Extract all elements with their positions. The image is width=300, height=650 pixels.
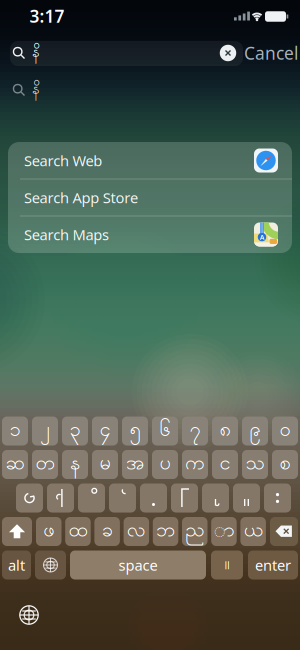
staticText: ၄ [99, 417, 110, 445]
staticText: ၆ [159, 417, 170, 445]
staticText: ခ [102, 517, 113, 546]
staticText: Cancel [244, 41, 298, 64]
staticText: space [118, 555, 157, 575]
staticText: A [260, 233, 264, 242]
staticText: ယ [244, 517, 263, 546]
staticText: ပ [159, 450, 170, 479]
staticText: ၉ [249, 417, 260, 445]
staticText: ၃ [69, 417, 80, 445]
staticText: န [70, 450, 80, 479]
staticText: Search App Store [24, 188, 138, 207]
staticText: နိ [32, 42, 40, 64]
staticText: ။ [224, 552, 229, 577]
staticText: ၈ [219, 417, 230, 445]
staticText: ထ [68, 517, 87, 546]
staticText: Search Web [24, 151, 102, 170]
staticText: မ [99, 450, 110, 479]
staticText: ဘ [156, 517, 175, 546]
staticText: ၀ [279, 417, 290, 445]
staticText: ၅ [129, 417, 140, 445]
staticText: စ [279, 450, 290, 479]
staticText: အ [126, 450, 144, 479]
staticText: enter [255, 555, 291, 575]
staticText: သ [245, 450, 264, 479]
staticText: ဖ [43, 517, 54, 546]
staticText: ာ [213, 517, 234, 546]
staticText: ၇ [189, 417, 200, 445]
staticText: ည [185, 517, 204, 546]
staticText: 3:17 [29, 4, 64, 27]
staticText: လ [127, 517, 146, 546]
staticText: င [219, 450, 230, 479]
staticText: alt [8, 555, 25, 575]
staticText: က [185, 450, 205, 479]
staticText: တ [35, 450, 54, 479]
staticText: နိ [32, 79, 40, 101]
staticText: ၂ [40, 417, 50, 445]
staticText: Search Maps [24, 225, 109, 244]
staticText: ဆ [5, 450, 24, 479]
staticText: ၁ [9, 417, 20, 445]
